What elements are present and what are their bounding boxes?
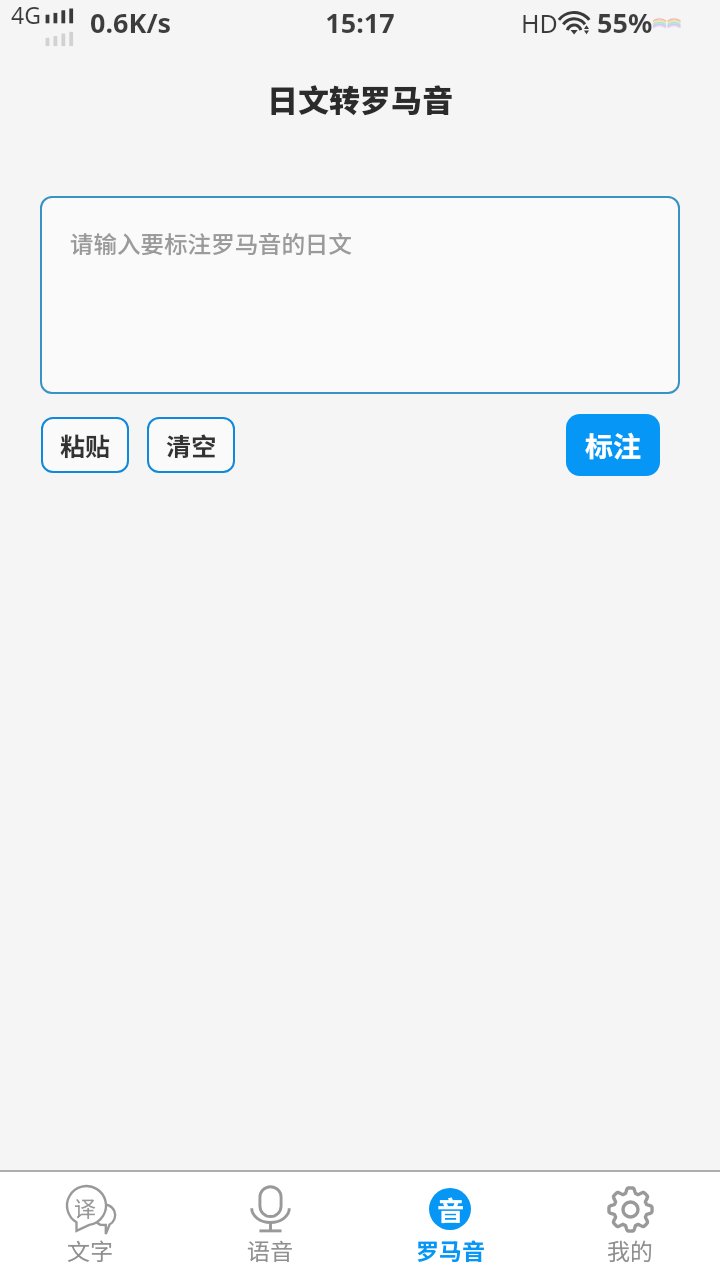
button[interactable]: 语音 — [180, 1172, 360, 1280]
button[interactable]: 我的 — [540, 1172, 720, 1280]
staticText: 我的 — [607, 1233, 653, 1266]
staticText: HD — [521, 6, 558, 40]
button[interactable]: 清空 — [147, 417, 235, 473]
button[interactable]: 粘贴 — [41, 417, 129, 473]
staticText: 15:17 — [0, 4, 720, 41]
button[interactable]: 标注 — [566, 414, 660, 476]
staticText: 文字 — [67, 1233, 113, 1266]
other: 我的 — [607, 1186, 654, 1233]
staticText: 译 — [74, 1191, 97, 1223]
staticText: 清空 — [166, 427, 217, 463]
button[interactable]: 文字 — [0, 1172, 180, 1280]
staticText: 4G — [11, 0, 41, 30]
staticText: 日文转罗马音 — [267, 76, 453, 121]
button[interactable]: 音 — [360, 1172, 540, 1280]
staticText: 音 — [437, 1190, 464, 1229]
staticText: 0.6K/s — [90, 4, 172, 41]
staticText: 粘贴 — [60, 427, 111, 463]
button[interactable]: 请输入要标注罗马音的日文 — [40, 196, 680, 394]
staticText: 55% — [597, 4, 653, 41]
staticText: 标注 — [585, 425, 642, 466]
staticText: 语音 — [247, 1233, 293, 1266]
other: 语音 — [247, 1186, 294, 1233]
staticText: 罗马音 — [416, 1233, 485, 1266]
staticText: 请输入要标注罗马音的日文 — [70, 226, 352, 260]
other: 文字 — [67, 1186, 114, 1233]
